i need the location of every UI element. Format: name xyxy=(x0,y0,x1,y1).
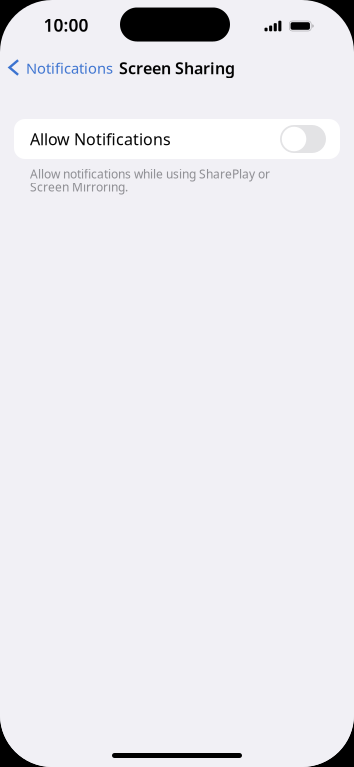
staticText: Allow notifications while using SharePla… xyxy=(30,166,270,195)
button[interactable]: Allow Notifications xyxy=(280,125,326,153)
staticText: Screen Sharing xyxy=(119,57,235,79)
staticText: Allow Notifications xyxy=(30,128,171,150)
staticText: Notifications xyxy=(26,58,113,78)
staticText: 10:00 xyxy=(43,13,88,36)
button[interactable]: Notifications xyxy=(0,51,119,85)
button[interactable]: Allow Notifications xyxy=(14,119,340,159)
